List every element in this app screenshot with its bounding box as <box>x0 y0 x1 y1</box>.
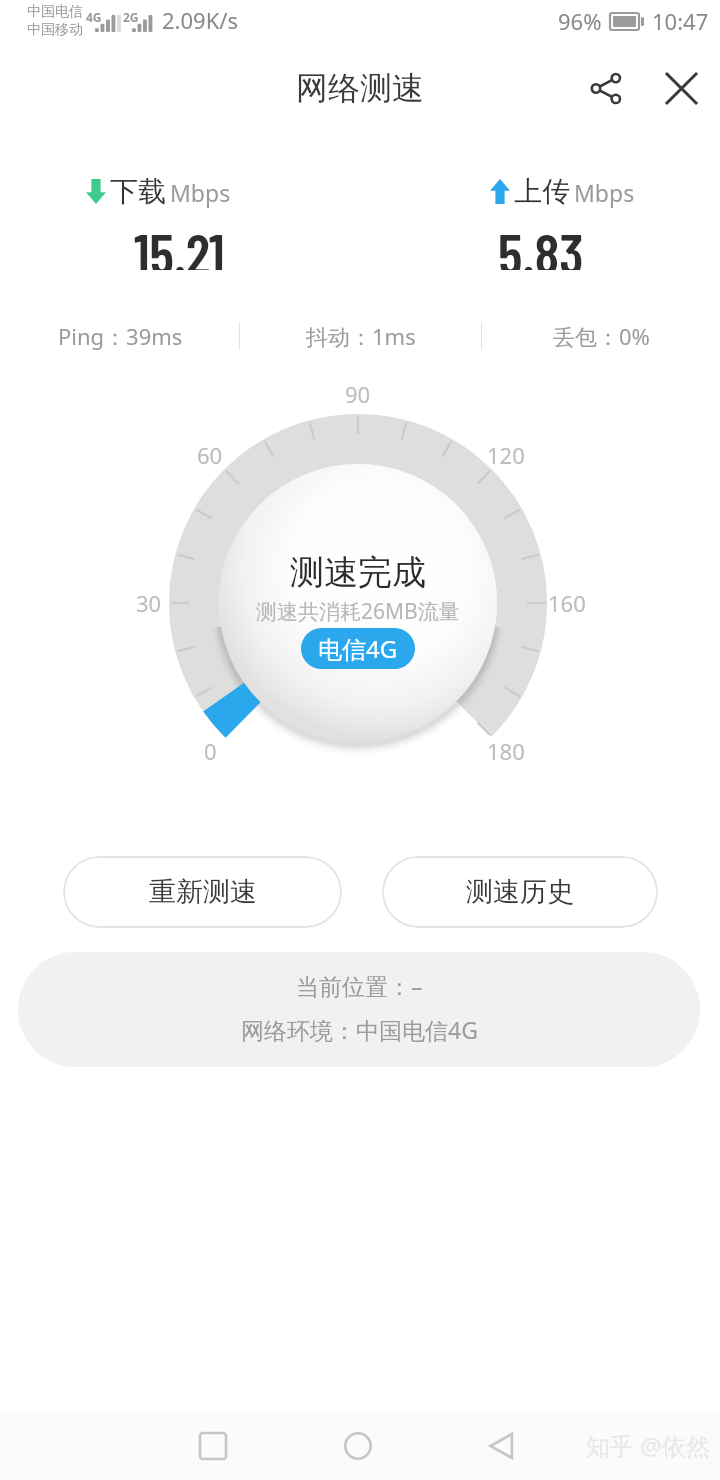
staticText: 180 <box>487 736 525 766</box>
staticText: 中国电信 <box>27 3 83 21</box>
staticText: 15.21 <box>134 218 225 270</box>
staticText: 160 <box>548 588 586 618</box>
button[interactable]: Recents <box>186 1419 240 1473</box>
staticText: 上传 <box>514 174 570 209</box>
staticText: 中国移动 <box>27 21 83 39</box>
staticText: 120 <box>487 440 525 470</box>
staticText: 重新测速 <box>149 875 257 909</box>
button[interactable]: Close <box>653 60 709 116</box>
button[interactable]: Home <box>331 1419 385 1473</box>
button[interactable]: Back <box>475 1419 529 1473</box>
staticText: 30 <box>136 588 162 618</box>
button[interactable]: 重新测速 <box>63 856 342 928</box>
staticText: 测速完成 <box>290 551 426 591</box>
button[interactable]: 测速历史 <box>382 856 658 928</box>
staticText: 2.09K/s <box>162 5 238 35</box>
button[interactable]: 电信4G <box>301 628 415 669</box>
staticText: 0 <box>204 736 217 766</box>
staticText: 知乎 @依然 <box>586 1429 710 1462</box>
staticText: 5.83 <box>498 218 584 270</box>
staticText: Mbps <box>574 177 635 208</box>
staticText: 下载 <box>110 174 166 209</box>
staticText: 2G <box>123 9 139 25</box>
staticText: 丢包：0% <box>553 321 650 351</box>
staticText: 10:47 <box>652 6 709 36</box>
staticText: 90 <box>345 379 371 409</box>
staticText: 测速共消耗26MB流量 <box>256 597 460 626</box>
staticText: 电信4G <box>318 632 398 665</box>
staticText: 网络环境：中国电信4G <box>241 1014 478 1045</box>
staticText: 网络测速 <box>296 68 424 108</box>
staticText: 测速历史 <box>466 875 574 909</box>
staticText: Ping：39ms <box>58 321 183 351</box>
staticText: 抖动：1ms <box>306 321 416 351</box>
staticText: 60 <box>197 440 223 470</box>
button[interactable]: Share <box>578 60 634 116</box>
staticText: 4G <box>86 9 102 25</box>
staticText: Mbps <box>170 177 231 208</box>
staticText: 当前位置：– <box>296 970 423 1001</box>
staticText: 96% <box>558 6 602 36</box>
